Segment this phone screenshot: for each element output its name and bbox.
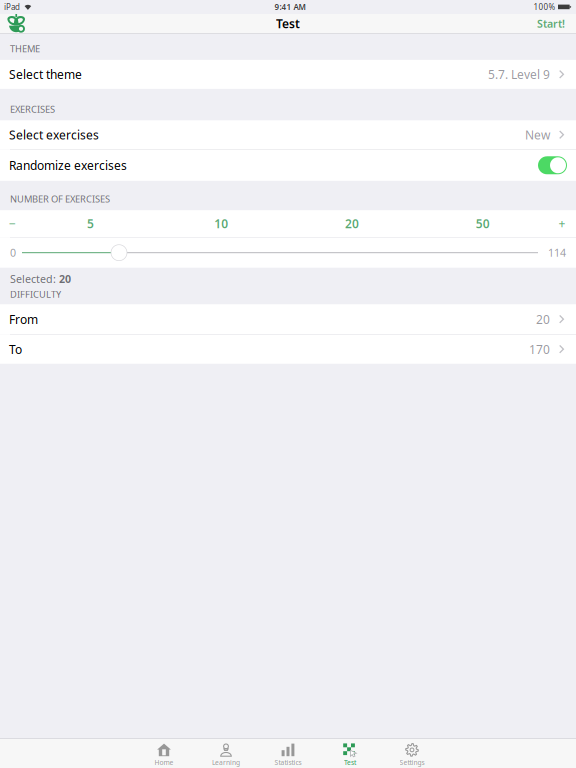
staticText: Start! (537, 16, 565, 31)
staticText: Home (154, 758, 173, 767)
staticText: THEME (10, 42, 40, 55)
button[interactable]: Learning (195, 739, 257, 768)
button[interactable]: Test (319, 739, 381, 768)
button[interactable]: Randomize exercises (0, 150, 576, 181)
staticText: iPad (4, 2, 20, 12)
staticText: 10 (214, 216, 228, 232)
staticText: 20 (345, 216, 359, 232)
button[interactable]: 50 (417, 210, 548, 237)
staticText: Test (276, 15, 300, 31)
staticText: From (9, 311, 38, 327)
staticText: 5 (87, 216, 94, 232)
button[interactable]: 5 (25, 210, 156, 237)
staticText: Selected: (10, 272, 59, 286)
staticText: To (9, 341, 22, 357)
staticText: Select theme (9, 66, 82, 82)
button[interactable]: − (0, 210, 25, 237)
staticText: EXERCISES (10, 103, 55, 115)
button[interactable]: From (0, 304, 576, 334)
button[interactable]: Home (133, 739, 195, 768)
staticText: New (525, 127, 550, 143)
staticText: 0 (10, 246, 16, 260)
staticText: − (9, 216, 16, 232)
button[interactable]: To (0, 335, 576, 364)
button[interactable]: Start! (527, 14, 576, 33)
staticText: Randomize exercises (9, 157, 127, 173)
staticText: 20 (59, 272, 71, 286)
staticText: Select exercises (9, 127, 99, 143)
button[interactable]: Statistics (257, 739, 319, 768)
staticText: 170 (529, 341, 550, 357)
button[interactable]: 10 (156, 210, 287, 237)
staticText: 114 (548, 246, 566, 260)
staticText: 100% (533, 2, 555, 12)
button[interactable]: Select exercises (0, 120, 576, 149)
button[interactable]: Settings (381, 739, 443, 768)
staticText: Test (344, 758, 356, 767)
staticText: NUMBER OF EXERCISES (10, 193, 110, 205)
staticText: 9:41 AM (274, 2, 305, 12)
staticText: + (558, 216, 565, 232)
staticText: 20 (536, 311, 550, 327)
staticText: 50 (476, 216, 490, 232)
staticText: Statistics (274, 758, 301, 767)
button[interactable]: + (548, 210, 576, 237)
staticText: 5.7. Level 9 (488, 66, 550, 82)
staticText: DIFFICULTY (10, 288, 61, 300)
staticText: Settings (399, 758, 424, 767)
staticText: Learning (212, 758, 240, 767)
button[interactable]: Select theme (0, 60, 576, 89)
button[interactable]: 20 (286, 210, 417, 237)
button[interactable]: Home (1, 14, 31, 33)
